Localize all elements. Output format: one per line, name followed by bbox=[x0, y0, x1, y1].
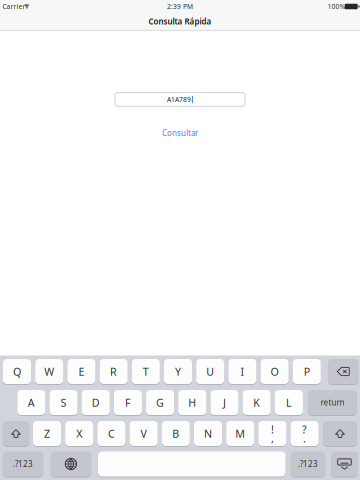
staticText: return bbox=[321, 397, 345, 408]
button[interactable]: C bbox=[97, 421, 125, 447]
button[interactable]: R bbox=[100, 359, 128, 385]
staticText: J bbox=[223, 395, 226, 410]
button[interactable]: Y bbox=[164, 359, 192, 385]
staticText: H bbox=[188, 395, 196, 410]
button[interactable]: U bbox=[196, 359, 224, 385]
staticText: E bbox=[78, 364, 84, 379]
button[interactable]: return bbox=[308, 390, 357, 416]
button[interactable]: I bbox=[228, 359, 256, 385]
staticText: , bbox=[271, 431, 274, 445]
button[interactable]: J bbox=[210, 390, 238, 416]
staticText: D bbox=[92, 395, 100, 410]
button[interactable]: G bbox=[146, 390, 174, 416]
staticText: N bbox=[204, 426, 212, 441]
button[interactable]: Shift bbox=[3, 421, 29, 447]
button[interactable]: Consultar bbox=[156, 125, 204, 141]
button[interactable]: W bbox=[35, 359, 63, 385]
staticText: G bbox=[156, 395, 164, 410]
staticText: L bbox=[286, 395, 292, 410]
staticText: A1A789 bbox=[167, 95, 191, 104]
staticText: K bbox=[253, 395, 260, 410]
staticText: M bbox=[235, 426, 245, 441]
staticText: P bbox=[304, 364, 310, 379]
button[interactable]: Hide keyboard bbox=[331, 451, 358, 477]
staticText: O bbox=[271, 364, 279, 379]
button[interactable]: M bbox=[226, 421, 254, 447]
staticText: S bbox=[60, 395, 66, 410]
staticText: 100% bbox=[328, 2, 346, 11]
button[interactable] bbox=[98, 451, 285, 477]
button[interactable]: Shift bbox=[323, 421, 357, 447]
button[interactable]: P bbox=[293, 359, 321, 385]
button[interactable]: N bbox=[194, 421, 222, 447]
staticText: .?123 bbox=[298, 459, 318, 469]
button[interactable]: B bbox=[162, 421, 190, 447]
button[interactable]: Q bbox=[3, 359, 31, 385]
button[interactable]: Next keyboard bbox=[51, 451, 91, 477]
button[interactable]: L bbox=[275, 390, 303, 416]
staticText: W bbox=[44, 364, 54, 379]
staticText: Z bbox=[44, 426, 50, 441]
button[interactable]: ? bbox=[291, 421, 319, 447]
staticText: A bbox=[28, 395, 35, 410]
button[interactable]: F bbox=[114, 390, 142, 416]
staticText: T bbox=[143, 364, 149, 379]
staticText: I bbox=[240, 364, 244, 379]
staticText: Q bbox=[13, 364, 21, 379]
staticText: Y bbox=[175, 364, 181, 379]
button[interactable]: .?123 bbox=[291, 451, 325, 477]
staticText: R bbox=[110, 364, 117, 379]
staticText: B bbox=[172, 426, 179, 441]
staticText: Consultar bbox=[162, 128, 198, 138]
staticText: ? bbox=[302, 422, 307, 436]
staticText: 2:39 PM bbox=[167, 2, 193, 11]
staticText: V bbox=[141, 426, 147, 441]
button[interactable]: K bbox=[243, 390, 271, 416]
button[interactable]: Delete bbox=[328, 359, 358, 385]
button[interactable]: V bbox=[130, 421, 158, 447]
staticText: ! bbox=[271, 422, 274, 436]
staticText: .?123 bbox=[13, 459, 33, 469]
staticText: Carrier bbox=[2, 2, 25, 11]
staticText: U bbox=[206, 364, 214, 379]
button[interactable]: T bbox=[132, 359, 160, 385]
staticText: X bbox=[76, 426, 82, 441]
button[interactable]: .?123 bbox=[3, 451, 43, 477]
button[interactable]: A bbox=[17, 390, 45, 416]
button[interactable]: ! bbox=[258, 421, 286, 447]
button[interactable]: E bbox=[67, 359, 95, 385]
button[interactable]: H bbox=[178, 390, 206, 416]
button[interactable]: X bbox=[65, 421, 93, 447]
staticText: F bbox=[125, 395, 131, 410]
staticText: C bbox=[108, 426, 115, 441]
button[interactable]: D bbox=[82, 390, 110, 416]
button[interactable]: S bbox=[49, 390, 77, 416]
staticText: . bbox=[303, 431, 306, 445]
button[interactable]: O bbox=[261, 359, 289, 385]
button[interactable]: Z bbox=[33, 421, 61, 447]
staticText: Consulta Rápida bbox=[148, 16, 211, 27]
